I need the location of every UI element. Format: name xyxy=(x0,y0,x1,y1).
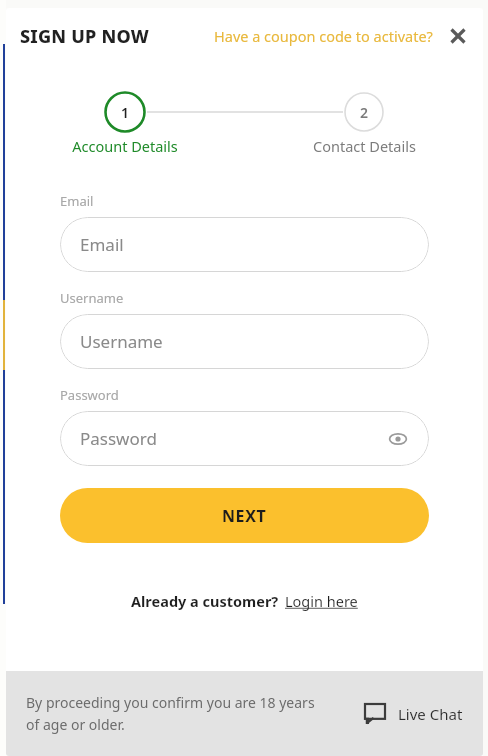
button[interactable]: Show password xyxy=(385,426,411,452)
button[interactable]: 2 xyxy=(349,97,379,127)
staticText: 2 xyxy=(360,103,369,122)
staticText: Password xyxy=(80,427,157,450)
staticText: 1 xyxy=(121,103,130,122)
staticText: Email xyxy=(60,192,94,210)
staticText: By proceeding you confirm you are 18 yea… xyxy=(26,693,326,734)
staticText: Username xyxy=(80,330,163,353)
button[interactable]: Password xyxy=(60,411,429,466)
staticText: Email xyxy=(80,233,124,256)
button[interactable]: Live Chat xyxy=(360,699,467,729)
staticText: Already a customer? xyxy=(131,591,279,611)
staticText: Login here xyxy=(285,591,358,611)
button[interactable]: NEXT xyxy=(60,488,429,543)
button[interactable]: Username xyxy=(60,314,429,369)
button[interactable]: Account Details xyxy=(60,136,190,156)
button[interactable]: Email xyxy=(60,217,429,272)
staticText: SIGN UP NOW xyxy=(20,24,149,49)
button[interactable]: Have a coupon code to activate? xyxy=(212,20,435,52)
staticText: Have a coupon code to activate? xyxy=(214,26,433,46)
button[interactable]: Login here xyxy=(285,591,358,611)
staticText: Username xyxy=(60,289,124,307)
staticText: Account Details xyxy=(72,136,178,156)
staticText: Password xyxy=(60,386,119,404)
staticText: NEXT xyxy=(222,505,267,527)
staticText: Live Chat xyxy=(398,704,463,724)
button[interactable]: Contact Details xyxy=(299,136,429,156)
staticText: Contact Details xyxy=(313,136,416,156)
button[interactable]: 1 xyxy=(110,97,140,127)
button[interactable]: Close xyxy=(441,19,475,53)
